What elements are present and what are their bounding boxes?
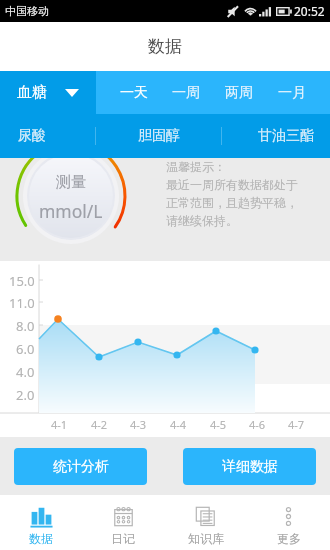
button[interactable]: 血糖: [0, 71, 96, 114]
button[interactable]: 一天: [108, 71, 160, 114]
staticText: 11.0: [9, 294, 35, 310]
staticText: 日记: [111, 531, 135, 546]
button[interactable]: 两周: [212, 71, 265, 114]
staticText: 更多: [277, 531, 301, 546]
staticText: 4-7: [288, 417, 305, 431]
staticText: 4-2: [91, 417, 108, 431]
staticText: 正常范围，且趋势平稳，: [166, 195, 298, 210]
button[interactable]: 更多: [247, 495, 330, 550]
staticText: mmol/L: [39, 199, 103, 223]
staticText: 6.0: [16, 340, 35, 356]
staticText: 15.0: [9, 272, 35, 288]
button[interactable]: 一月: [265, 71, 318, 114]
staticText: 血糖: [17, 83, 47, 102]
button[interactable]: 甘油三酯: [246, 114, 326, 158]
button[interactable]: 测量: [31, 173, 111, 229]
staticText: 数据: [29, 531, 53, 546]
staticText: 4-6: [249, 417, 266, 431]
button[interactable]: 胆固醇: [119, 114, 199, 158]
staticText: 请继续保持。: [166, 213, 238, 228]
staticText: 数据: [148, 36, 182, 57]
staticText: 中国移动: [5, 4, 49, 18]
staticText: 尿酸: [18, 127, 46, 145]
staticText: 统计分析: [53, 458, 109, 476]
staticText: 8.0: [16, 317, 35, 333]
button[interactable]: 尿酸: [0, 114, 72, 158]
button[interactable]: 详细数据: [183, 448, 316, 485]
staticText: 胆固醇: [138, 127, 180, 145]
staticText: 最近一周所有数据都处于: [166, 177, 298, 192]
staticText: 一天: [120, 84, 148, 102]
staticText: 4-1: [51, 417, 68, 431]
staticText: 详细数据: [222, 458, 278, 476]
staticText: 4-4: [170, 417, 187, 431]
staticText: 一月: [278, 84, 306, 102]
button[interactable]: 日记: [82, 495, 164, 550]
staticText: 一周: [172, 84, 200, 102]
staticText: 两周: [225, 84, 253, 102]
button[interactable]: 数据: [0, 495, 82, 550]
staticText: 2.0: [16, 386, 35, 402]
button[interactable]: 一周: [160, 71, 212, 114]
staticText: 温馨提示：: [166, 159, 226, 174]
staticText: 20:52: [294, 3, 325, 19]
staticText: 4-3: [130, 417, 147, 431]
staticText: 4-5: [210, 417, 227, 431]
staticText: 知识库: [188, 531, 224, 546]
button[interactable]: 统计分析: [14, 448, 147, 485]
staticText: 4.0: [16, 363, 35, 379]
staticText: 甘油三酯: [258, 127, 314, 145]
button[interactable]: 知识库: [164, 495, 247, 550]
staticText: 测量: [56, 173, 86, 192]
